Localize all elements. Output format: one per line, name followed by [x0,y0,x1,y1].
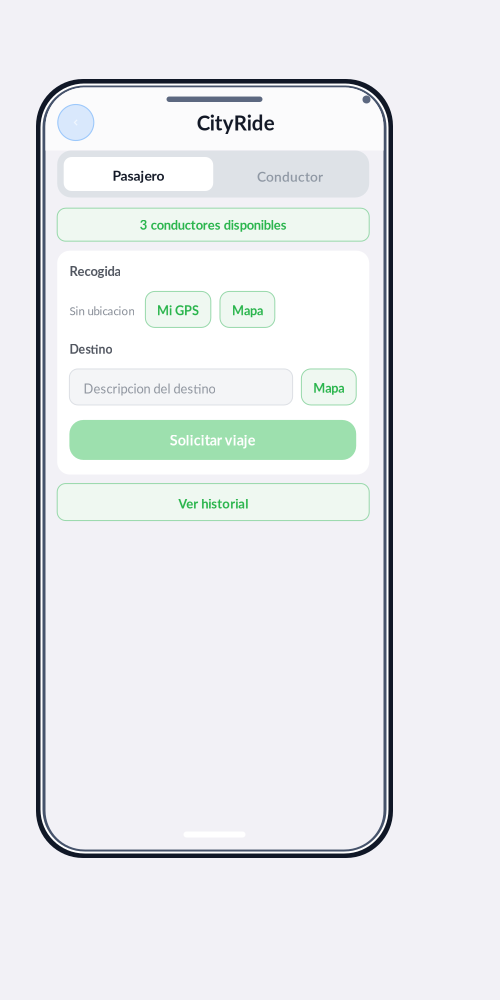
button[interactable]: Mapa [220,291,275,327]
button[interactable]: Mapa [301,369,356,405]
staticText: Descripcion del destino [83,381,215,396]
staticText: Recogida [69,263,121,279]
button[interactable]: Conductor [213,157,363,191]
staticText: Solicitar viaje [170,431,256,449]
staticText: Mapa [232,303,263,318]
button[interactable]: Ver historial [57,483,369,520]
staticText: Mi GPS [157,303,199,318]
button[interactable]: Back [58,104,94,140]
staticText: CityRide [197,110,275,135]
staticText: Pasajero [112,167,164,184]
staticText: Destino [69,342,112,356]
button[interactable]: Solicitar viaje [69,420,356,460]
button[interactable]: Pasajero [64,157,213,191]
staticText: 3 conductores disponibles [140,217,287,232]
staticText: Sin ubicacion [69,304,134,318]
button[interactable]: Mi GPS [145,291,211,327]
staticText: Ver historial [178,496,248,511]
staticText: Mapa [313,380,344,395]
staticText: Conductor [257,168,323,185]
